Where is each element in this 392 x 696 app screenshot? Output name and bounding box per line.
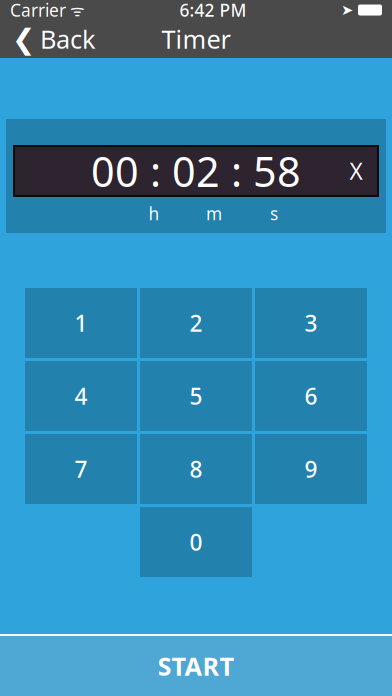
staticText: s [270,202,278,225]
staticText: 6:42 PM [179,0,246,21]
staticText: 3 [304,308,317,338]
staticText: X [349,156,362,186]
staticText: 8 [189,454,202,484]
button[interactable]: 7 [25,434,137,504]
button[interactable]: 4 [25,361,137,431]
staticText: Carrier [10,0,66,21]
staticText: 0 [189,527,202,557]
staticText: 7 [74,454,87,484]
button[interactable]: 5 [140,361,252,431]
staticText: 5 [189,381,202,411]
button[interactable]: Clear [334,146,378,196]
button[interactable]: START [0,634,392,696]
staticText: 00 : 02 : 58 [91,144,301,198]
button[interactable]: 3 [255,288,367,358]
staticText: Timer [161,22,230,56]
staticText: ➤ [341,2,353,18]
staticText: 2 [189,308,202,338]
staticText: 1 [74,308,87,338]
staticText: 6 [304,381,317,411]
staticText: 9 [304,454,317,484]
staticText: 4 [74,381,87,411]
button[interactable]: 0 [140,507,252,577]
button[interactable]: 2 [140,288,252,358]
staticText: ❮ [12,23,35,55]
button[interactable]: 6 [255,361,367,431]
button[interactable]: 1 [25,288,137,358]
button[interactable]: ❮ [0,20,108,58]
button[interactable]: 9 [255,434,367,504]
staticText: Back [40,22,96,56]
staticText: ᯤ [66,0,85,21]
staticText: START [157,649,234,683]
staticText: h [148,202,159,225]
staticText: m [206,202,222,225]
button[interactable]: 8 [140,434,252,504]
